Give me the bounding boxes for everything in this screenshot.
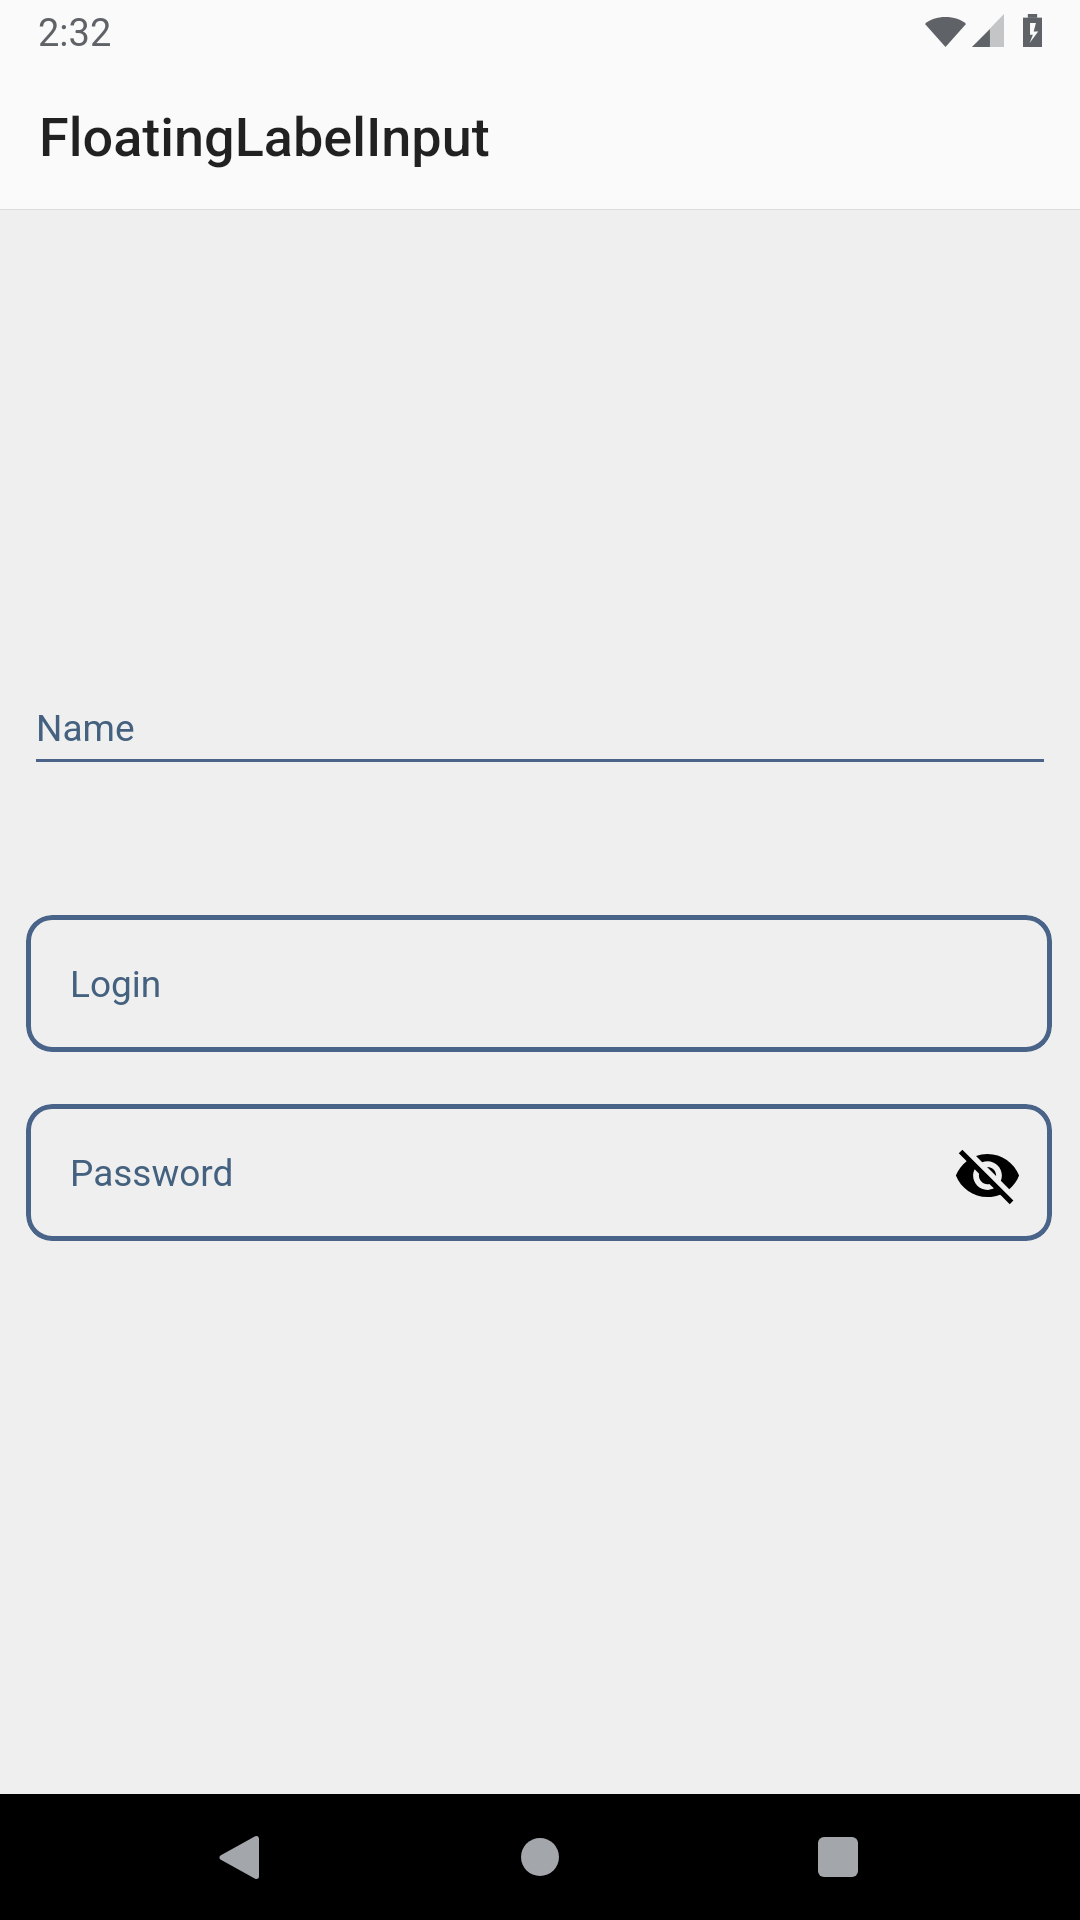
staticText: 2:32 — [38, 11, 112, 56]
staticText: FloatingLabelInput — [39, 106, 490, 169]
button[interactable]: Name — [36, 690, 1044, 762]
staticText: Login — [70, 963, 162, 1006]
button[interactable]: Password — [26, 1104, 1052, 1241]
button[interactable]: Login — [26, 915, 1052, 1052]
button[interactable]: Back — [179, 1797, 299, 1917]
staticText: Password — [70, 1152, 234, 1195]
button[interactable]: Toggle password visibility — [951, 1139, 1023, 1211]
button[interactable]: Home — [480, 1797, 600, 1917]
button[interactable]: Recent apps — [778, 1797, 898, 1917]
staticText: Name — [36, 707, 135, 750]
